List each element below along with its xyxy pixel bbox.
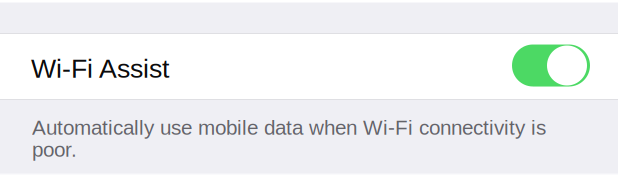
staticText: Automatically use mobile data when Wi-Fi… xyxy=(32,116,546,161)
button[interactable]: Wi-Fi Assist xyxy=(0,34,624,99)
staticText: Wi-Fi Assist xyxy=(31,54,169,83)
